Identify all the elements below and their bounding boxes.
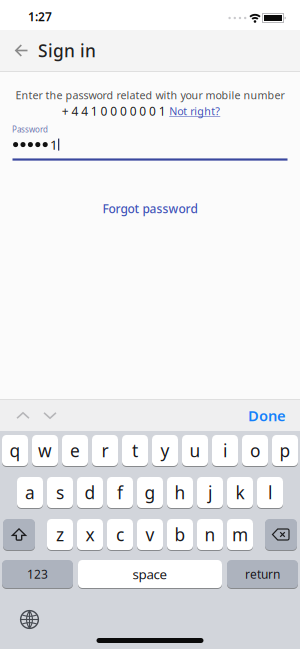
staticText: 1:27 xyxy=(28,8,52,24)
button[interactable]: Back xyxy=(15,30,28,71)
button[interactable]: w xyxy=(32,435,58,466)
button[interactable]: j xyxy=(197,477,223,508)
button[interactable]: i xyxy=(212,435,238,466)
staticText: p xyxy=(279,439,290,462)
staticText: 1 xyxy=(159,103,166,119)
staticText: Forgot password xyxy=(102,201,197,216)
staticText: + xyxy=(62,103,69,119)
button[interactable]: b xyxy=(167,519,193,550)
button[interactable]: Forgot password xyxy=(102,201,197,216)
staticText: f xyxy=(117,481,123,504)
staticText: c xyxy=(116,523,124,546)
button[interactable]: return xyxy=(227,560,298,588)
staticText: o xyxy=(250,439,260,462)
staticText: y xyxy=(160,439,169,462)
button[interactable]: v xyxy=(137,519,163,550)
staticText: w xyxy=(38,439,52,462)
staticText: z xyxy=(56,523,64,546)
staticText: 1 xyxy=(91,103,98,119)
staticText: d xyxy=(84,481,95,504)
button[interactable]: Next field xyxy=(43,400,57,431)
button[interactable]: Delete xyxy=(265,519,297,550)
staticText: 4 xyxy=(71,103,78,119)
staticText: 0 xyxy=(139,103,146,119)
staticText: h xyxy=(174,481,185,504)
staticText: i xyxy=(223,439,227,462)
button[interactable]: Shift xyxy=(3,519,35,550)
button[interactable]: a xyxy=(17,477,43,508)
button[interactable]: x xyxy=(77,519,103,550)
staticText: 1 xyxy=(50,136,58,153)
button[interactable]: p xyxy=(272,435,298,466)
staticText: 0 xyxy=(110,103,117,119)
button[interactable]: z xyxy=(47,519,73,550)
staticText: g xyxy=(144,481,155,504)
staticText: v xyxy=(145,523,154,546)
button[interactable]: Password xyxy=(0,119,300,161)
button[interactable]: t xyxy=(122,435,148,466)
staticText: q xyxy=(9,439,20,462)
staticText: 0 xyxy=(130,103,137,119)
button[interactable]: e xyxy=(62,435,88,466)
staticText: Not right? xyxy=(169,104,220,118)
staticText: m xyxy=(232,523,248,546)
staticText: s xyxy=(56,481,64,504)
button[interactable]: u xyxy=(182,435,208,466)
button[interactable]: g xyxy=(137,477,163,508)
button[interactable]: space xyxy=(78,560,222,588)
staticText: e xyxy=(70,439,80,462)
button[interactable]: o xyxy=(242,435,268,466)
staticText: 0 xyxy=(149,103,156,119)
button[interactable]: h xyxy=(167,477,193,508)
staticText: Enter the password related with your mob… xyxy=(15,88,284,102)
staticText: b xyxy=(174,523,185,546)
staticText: r xyxy=(101,439,108,462)
button[interactable]: s xyxy=(47,477,73,508)
button[interactable]: Not right? xyxy=(169,104,220,118)
staticText: k xyxy=(235,481,244,504)
button[interactable]: k xyxy=(227,477,253,508)
button[interactable]: f xyxy=(107,477,133,508)
staticText: x xyxy=(85,523,94,546)
button[interactable]: y xyxy=(152,435,178,466)
button[interactable]: Previous field xyxy=(16,400,30,431)
button[interactable]: n xyxy=(197,519,223,550)
staticText: 0 xyxy=(120,103,127,119)
button[interactable]: l xyxy=(257,477,283,508)
button[interactable]: 123 xyxy=(2,560,73,588)
staticText: space xyxy=(132,565,167,583)
staticText: Sign in xyxy=(38,39,96,62)
staticText: 123 xyxy=(27,566,48,582)
staticText: 0 xyxy=(100,103,107,119)
staticText: a xyxy=(25,481,35,504)
button[interactable]: q xyxy=(2,435,28,466)
button[interactable]: m xyxy=(227,519,253,550)
staticText: Password xyxy=(12,124,48,135)
button[interactable]: Done xyxy=(248,406,286,425)
staticText: Done xyxy=(248,406,286,425)
button[interactable]: d xyxy=(77,477,103,508)
button[interactable]: r xyxy=(92,435,118,466)
staticText: j xyxy=(208,481,212,504)
staticText: t xyxy=(132,439,138,462)
staticText: l xyxy=(268,481,272,504)
staticText: return xyxy=(245,566,280,582)
button[interactable]: c xyxy=(107,519,133,550)
staticText: n xyxy=(204,523,215,546)
staticText: 4 xyxy=(81,103,88,119)
button[interactable]: Next keyboard xyxy=(20,610,39,629)
staticText: u xyxy=(189,439,200,462)
